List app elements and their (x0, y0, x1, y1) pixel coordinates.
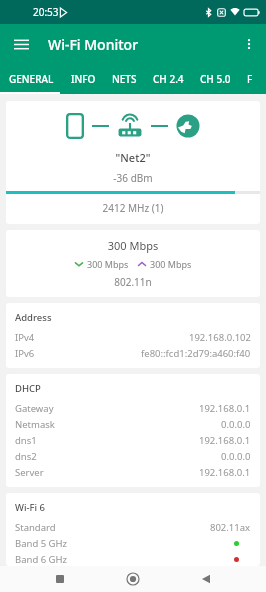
staticText: 300 Mbps (87, 258, 129, 270)
staticText: 20:53 (33, 5, 59, 19)
staticText: 192.168.0.1 (199, 466, 251, 479)
staticText: Wi-Fi 6 (15, 501, 46, 514)
staticText: NETS (112, 72, 137, 86)
staticText: 0.0.0.0 (221, 450, 251, 463)
button[interactable]: Recent apps (47, 566, 73, 592)
staticText: 300 Mbps (6, 238, 260, 253)
staticText: DHCP (15, 382, 41, 395)
button[interactable]: CH 2.4 (145, 64, 192, 94)
staticText: Wi-Fi Monitor (48, 35, 139, 54)
button[interactable]: CH 5.0 (192, 64, 239, 94)
staticText: 0.0.0.0 (221, 418, 251, 431)
button[interactable]: NETS (104, 64, 145, 94)
staticText: Gateway (15, 402, 54, 415)
staticText: -36 dBm (6, 171, 260, 185)
button[interactable]: INFO (63, 64, 104, 94)
staticText: 300 Mbps (150, 258, 192, 270)
staticText: 2412 MHz (1) (6, 201, 260, 215)
staticText: Band 6 GHz (15, 553, 68, 566)
staticText: Server (15, 466, 44, 479)
staticText: Netmask (15, 418, 55, 431)
staticText: 802.11ax (210, 521, 251, 534)
button[interactable]: Open navigation menu (8, 31, 34, 57)
staticText: fe80::fcd1:2d79:a460:f40 (141, 347, 251, 360)
staticText: "Net2" (6, 150, 260, 165)
staticText: Band 5 GHz (15, 537, 68, 550)
staticText: INFO (71, 72, 96, 86)
staticText: dns2 (15, 450, 37, 463)
staticText: 802.11n (6, 275, 260, 289)
staticText: CH 2.4 (153, 72, 184, 86)
staticText: F (247, 72, 253, 86)
staticText: 192.168.0.1 (199, 434, 251, 447)
button[interactable]: F (239, 64, 261, 94)
staticText: Address (15, 311, 52, 324)
button[interactable]: More options (236, 31, 262, 57)
button[interactable]: GENERAL (0, 64, 63, 94)
staticText: 192.168.0.1 (199, 402, 251, 415)
button[interactable]: Back (193, 566, 219, 592)
staticText: IPv4 (15, 331, 35, 344)
staticText: GENERAL (9, 72, 54, 86)
staticText: Standard (15, 521, 56, 534)
staticText: dns1 (15, 434, 37, 447)
staticText: 192.168.0.102 (189, 331, 251, 344)
button[interactable]: Home (120, 566, 146, 592)
staticText: IPv6 (15, 347, 35, 360)
staticText: CH 5.0 (200, 72, 231, 86)
